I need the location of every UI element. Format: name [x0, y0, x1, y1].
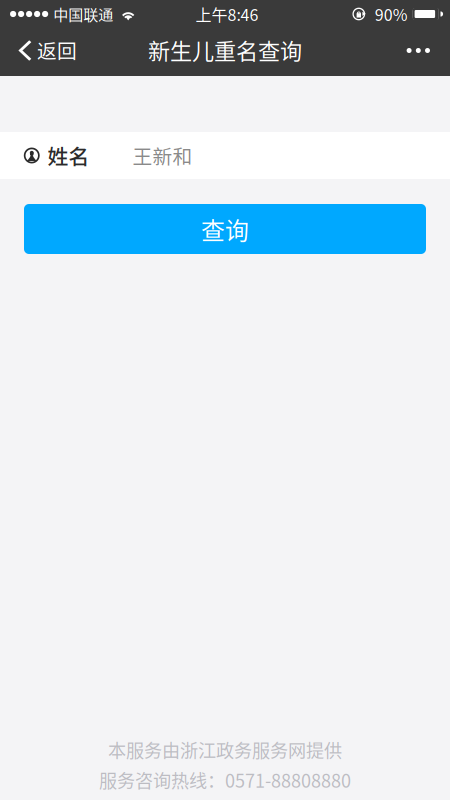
button[interactable]: 返回 [0, 28, 91, 76]
staticText: 服务咨询热线：0571-88808880 [99, 767, 351, 793]
staticText: 90% [375, 2, 408, 26]
button[interactable]: 查询 [24, 204, 426, 254]
staticText: 中国联通 [53, 3, 113, 25]
staticText: 返回 [37, 36, 77, 64]
staticText: 查询 [201, 212, 249, 246]
staticText: 上午8:46 [195, 2, 258, 26]
staticText: 新生儿重名查询 [148, 33, 302, 65]
staticText: 本服务由浙江政务服务网提供 [108, 736, 342, 763]
staticText: 王新和 [132, 141, 192, 170]
button[interactable]: More [391, 28, 450, 76]
staticText: 姓名 [47, 140, 89, 170]
button[interactable]: 姓名 [0, 132, 450, 179]
